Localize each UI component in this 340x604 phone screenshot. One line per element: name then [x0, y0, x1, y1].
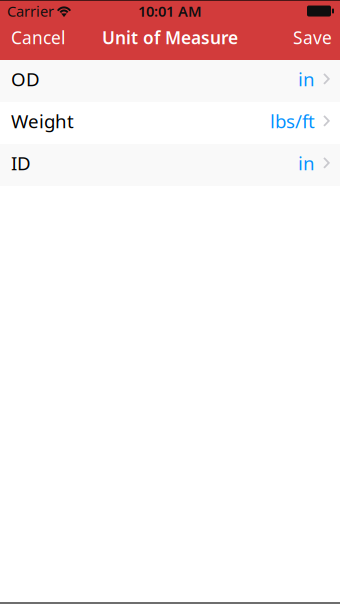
staticText: ID	[11, 151, 31, 175]
button[interactable]: Weight	[0, 102, 340, 144]
button[interactable]: OD	[0, 60, 340, 102]
staticText: Cancel	[11, 26, 65, 49]
button[interactable]: ID	[0, 144, 340, 186]
staticText: Weight	[11, 109, 74, 133]
staticText: Save	[293, 26, 332, 49]
button[interactable]: Save	[281, 20, 340, 60]
button[interactable]: Cancel	[0, 20, 76, 60]
staticText: 10:01 AM	[138, 1, 202, 21]
staticText: lbs/ft	[270, 109, 315, 133]
staticText: OD	[11, 67, 40, 91]
staticText: in	[298, 67, 315, 91]
staticText: in	[298, 151, 315, 175]
staticText: Carrier	[7, 1, 54, 21]
staticText: Unit of Measure	[102, 26, 238, 49]
